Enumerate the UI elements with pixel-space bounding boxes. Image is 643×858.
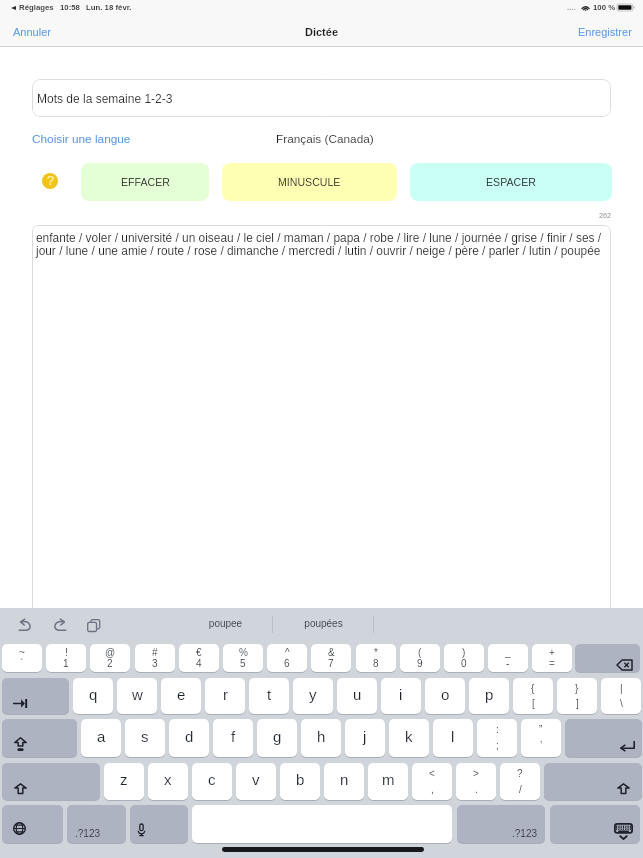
staticText: y — [309, 686, 317, 703]
button[interactable]: Tabulation — [2, 678, 69, 714]
button[interactable]: r — [205, 678, 245, 714]
button[interactable]: Annuler — [14, 614, 36, 636]
button[interactable]: s — [125, 719, 165, 757]
button[interactable]: k — [389, 719, 429, 757]
staticText: ~ — [19, 647, 25, 658]
button[interactable]: .?123 — [457, 805, 545, 843]
button[interactable]: ! — [46, 644, 86, 672]
button[interactable]: Choisir une langue — [32, 132, 131, 145]
button[interactable]: : — [477, 719, 517, 757]
button[interactable]: EFFACER — [81, 163, 209, 201]
button[interactable]: } — [557, 678, 597, 714]
staticText: n — [340, 771, 349, 788]
button[interactable]: n — [324, 763, 364, 800]
button[interactable]: w — [117, 678, 157, 714]
button[interactable]: poupee — [197, 618, 254, 629]
staticText: & — [328, 647, 335, 658]
staticText: ” — [539, 724, 543, 735]
staticText: € — [196, 647, 202, 658]
staticText: 1 — [63, 658, 69, 669]
staticText: Choisir une langue — [32, 132, 131, 145]
button[interactable]: a — [81, 719, 121, 757]
staticText: 10:58 — [60, 3, 80, 12]
button[interactable]: | — [601, 678, 641, 714]
button[interactable]: Majuscule — [2, 763, 100, 800]
button[interactable]: Retour — [565, 719, 642, 757]
button[interactable]: enfante / voler / université / un oiseau… — [32, 225, 611, 645]
button[interactable]: ~ — [2, 644, 42, 672]
button[interactable]: Changer de clavier — [2, 805, 63, 843]
button[interactable]: l — [433, 719, 473, 757]
staticText: : — [496, 724, 499, 735]
button[interactable]: f — [213, 719, 253, 757]
staticText: .?123 — [75, 828, 101, 839]
staticText: % — [239, 647, 248, 658]
button[interactable]: q — [73, 678, 113, 714]
button[interactable]: Masquer le clavier — [550, 805, 640, 843]
button[interactable]: MINUSCULE — [222, 163, 397, 201]
button[interactable]: Retour arrière — [575, 644, 640, 672]
staticText: Lun. 18 févr. — [86, 3, 132, 12]
button[interactable]: Mots de la semaine 1-2-3 — [32, 79, 611, 117]
button[interactable]: g — [257, 719, 297, 757]
staticText: Réglages — [19, 3, 54, 12]
button[interactable]: Rétablir — [48, 614, 70, 636]
button[interactable]: c — [192, 763, 232, 800]
button[interactable]: & — [311, 644, 351, 672]
button[interactable]: x — [148, 763, 188, 800]
staticText: ) — [462, 647, 466, 658]
button[interactable]: Annuler — [13, 26, 51, 38]
button[interactable]: Dictée vocale — [130, 805, 188, 843]
button[interactable]: € — [179, 644, 219, 672]
button[interactable]: b — [280, 763, 320, 800]
button[interactable]: v — [236, 763, 276, 800]
staticText: 2 — [107, 658, 113, 669]
button[interactable]: m — [368, 763, 408, 800]
button[interactable]: ) — [444, 644, 484, 672]
button[interactable]: { — [513, 678, 553, 714]
staticText: a — [97, 728, 106, 745]
button[interactable]: j — [345, 719, 385, 757]
button[interactable]: Majuscule — [544, 763, 642, 800]
button[interactable]: i — [381, 678, 421, 714]
button[interactable]: Verrouillage majuscules — [2, 719, 77, 757]
staticText: # — [152, 647, 158, 658]
button[interactable]: ? — [500, 763, 540, 800]
staticText: 100 % — [593, 3, 616, 12]
button[interactable]: Enregistrer — [578, 26, 632, 38]
button[interactable]: > — [456, 763, 496, 800]
staticText: 9 — [417, 658, 423, 669]
button[interactable]: y — [293, 678, 333, 714]
button[interactable]: z — [104, 763, 144, 800]
button[interactable]: ( — [400, 644, 440, 672]
button[interactable]: + — [532, 644, 572, 672]
staticText: v — [252, 771, 260, 788]
button[interactable]: ^ — [267, 644, 307, 672]
staticText: c — [208, 771, 216, 788]
button[interactable]: p — [469, 678, 509, 714]
button[interactable]: % — [223, 644, 263, 672]
button[interactable]: < — [412, 763, 452, 800]
button[interactable]: poupées — [294, 618, 353, 629]
button[interactable]: ” — [521, 719, 561, 757]
button[interactable]: @ — [90, 644, 130, 672]
button[interactable]: ESPACER — [410, 163, 612, 201]
staticText: s — [141, 728, 149, 745]
button[interactable]: .?123 — [67, 805, 126, 843]
staticText: q — [89, 686, 98, 703]
button[interactable]: d — [169, 719, 209, 757]
button[interactable]: Aide — [42, 173, 58, 189]
button[interactable]: * — [356, 644, 396, 672]
button[interactable]: u — [337, 678, 377, 714]
button[interactable]: h — [301, 719, 341, 757]
staticText: MINUSCULE — [278, 176, 341, 188]
button[interactable]: _ — [488, 644, 528, 672]
button[interactable]: e — [161, 678, 201, 714]
button[interactable]: Coller — [82, 614, 104, 636]
staticText: _ — [505, 647, 511, 658]
button[interactable]: o — [425, 678, 465, 714]
button[interactable]: t — [249, 678, 289, 714]
staticText: g — [273, 728, 282, 745]
button[interactable]: # — [135, 644, 175, 672]
